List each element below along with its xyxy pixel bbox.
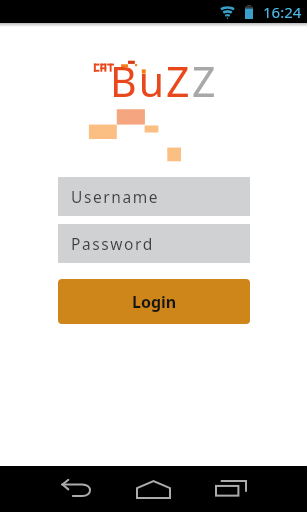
button[interactable]: Login xyxy=(58,279,250,324)
staticText: Z xyxy=(192,53,216,109)
button[interactable]: Home xyxy=(115,466,192,512)
button[interactable]: Username xyxy=(58,177,250,216)
staticText: Username xyxy=(71,186,160,207)
staticText: Password xyxy=(71,233,154,254)
staticText: 16:24 xyxy=(263,2,302,22)
staticText: Login xyxy=(132,291,177,313)
button[interactable]: Password xyxy=(58,224,250,263)
staticText: BuZ xyxy=(110,53,192,109)
button[interactable]: Back xyxy=(38,466,115,512)
button[interactable]: Recent apps xyxy=(192,466,269,512)
